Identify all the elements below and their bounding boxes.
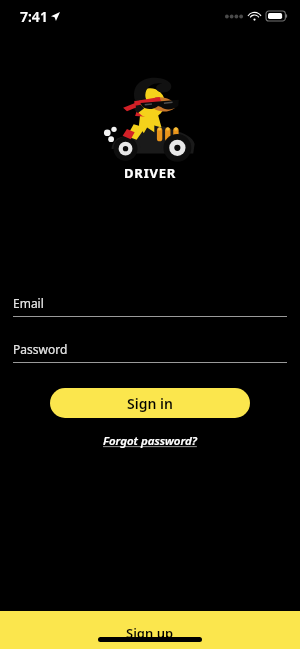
staticText: Forgot password? (103, 433, 197, 449)
staticText: Email (13, 295, 44, 311)
staticText: Password (13, 341, 68, 357)
staticText: DRIVER (124, 164, 177, 182)
button[interactable]: Email (13, 295, 287, 317)
staticText: Sign up (126, 624, 174, 642)
button[interactable]: Forgot password? (95, 430, 205, 452)
staticText: 7:41 (20, 7, 48, 26)
button[interactable]: Password (13, 341, 287, 363)
staticText: Sign in (127, 394, 173, 413)
button[interactable]: Sign up (0, 611, 300, 649)
button[interactable]: Sign in (50, 388, 250, 418)
